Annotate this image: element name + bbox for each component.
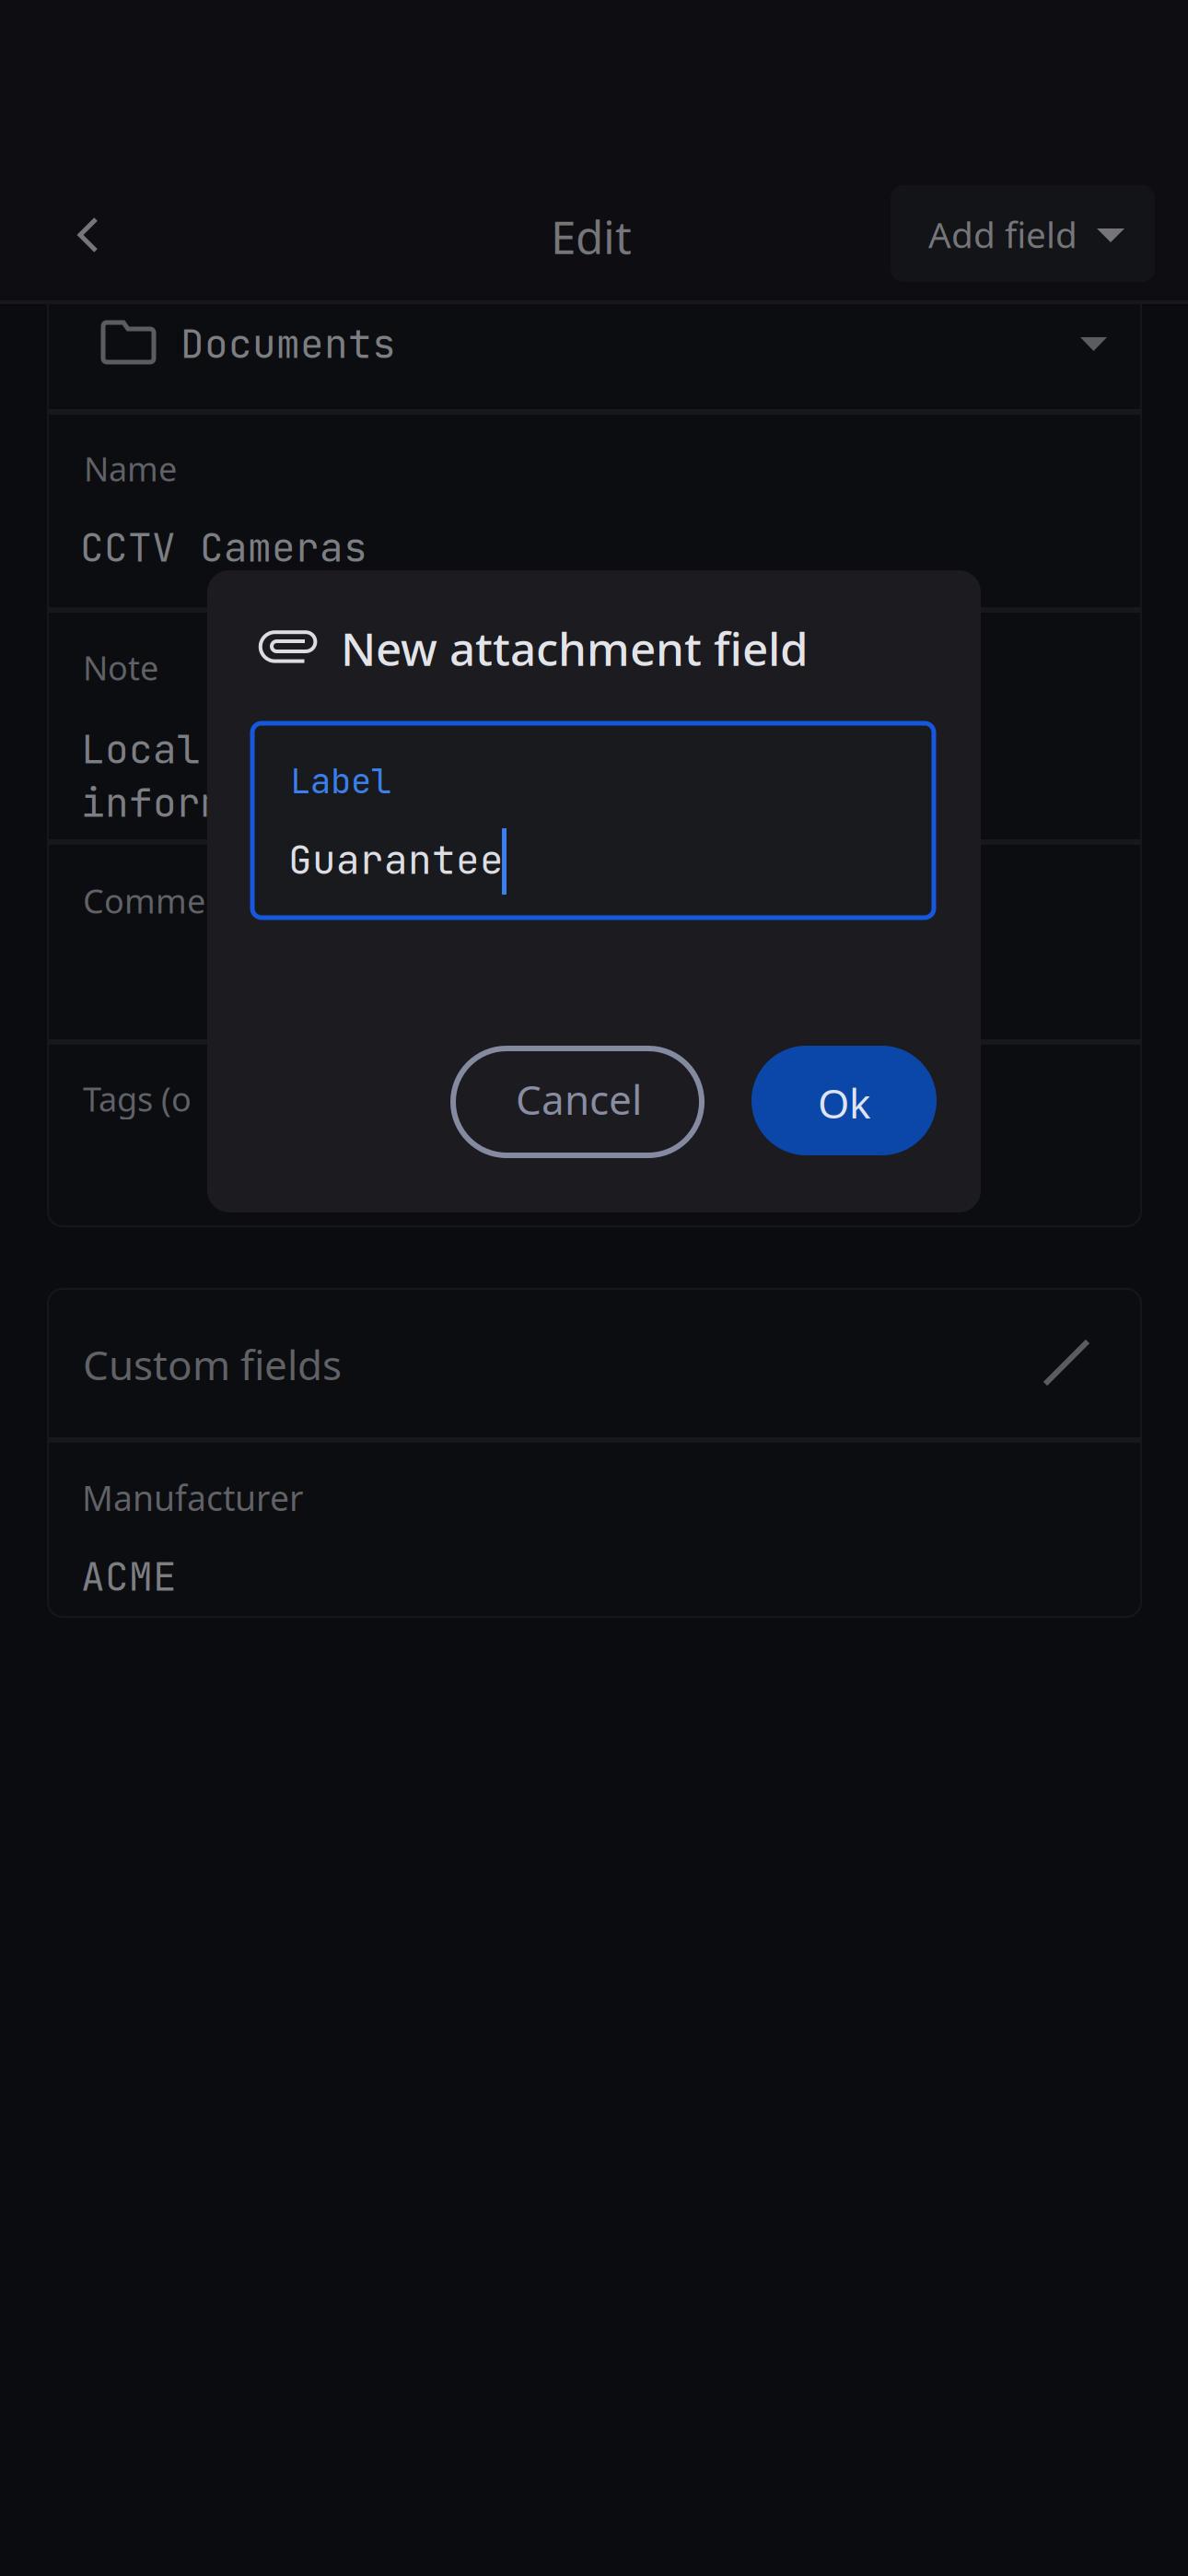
staticText: New attachment field xyxy=(341,617,809,679)
staticText: Local xyxy=(81,723,201,775)
staticText: Note xyxy=(83,645,158,690)
staticText: CCTV Cameras xyxy=(80,521,367,573)
button[interactable]: Add field xyxy=(891,185,1155,282)
staticText: Label xyxy=(290,758,391,804)
staticText: ACME xyxy=(81,1551,177,1602)
staticText: Manufacturer xyxy=(82,1474,303,1521)
staticText: Documents xyxy=(181,318,396,370)
staticText: Name xyxy=(84,446,177,491)
button[interactable]: Ok xyxy=(751,1046,937,1155)
staticText: Tags (o xyxy=(83,1076,192,1121)
staticText: Guarantee xyxy=(288,834,504,886)
staticText: Edit xyxy=(551,205,632,267)
staticText: Comme xyxy=(83,878,205,923)
staticText: Add field xyxy=(928,210,1077,259)
staticText: inform xyxy=(81,777,225,829)
staticText: Custom fields xyxy=(83,1337,342,1392)
staticText: Ok xyxy=(818,1075,870,1130)
button[interactable]: Cancel xyxy=(450,1046,705,1158)
staticText: Cancel xyxy=(516,1071,642,1127)
button[interactable]: Back xyxy=(32,180,143,290)
